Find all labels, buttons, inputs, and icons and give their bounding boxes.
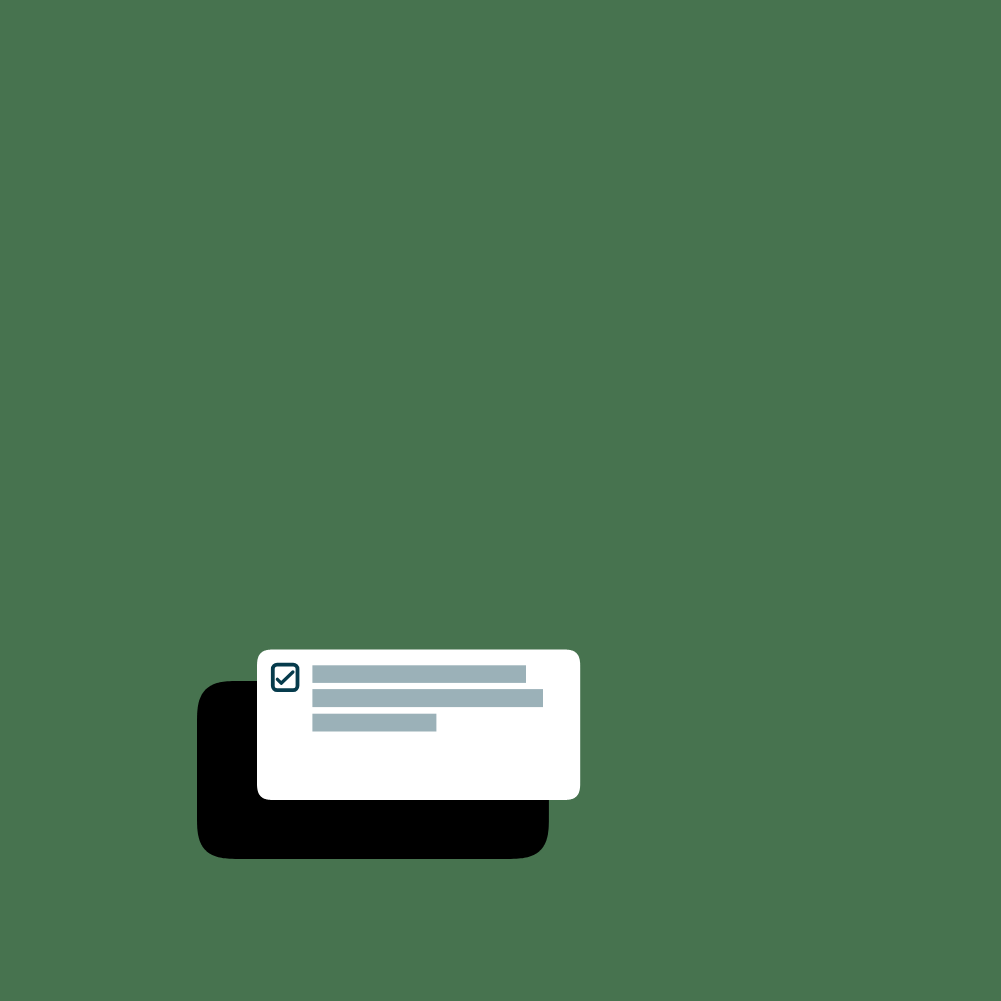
button[interactable]: Completed task card (257, 649, 580, 800)
